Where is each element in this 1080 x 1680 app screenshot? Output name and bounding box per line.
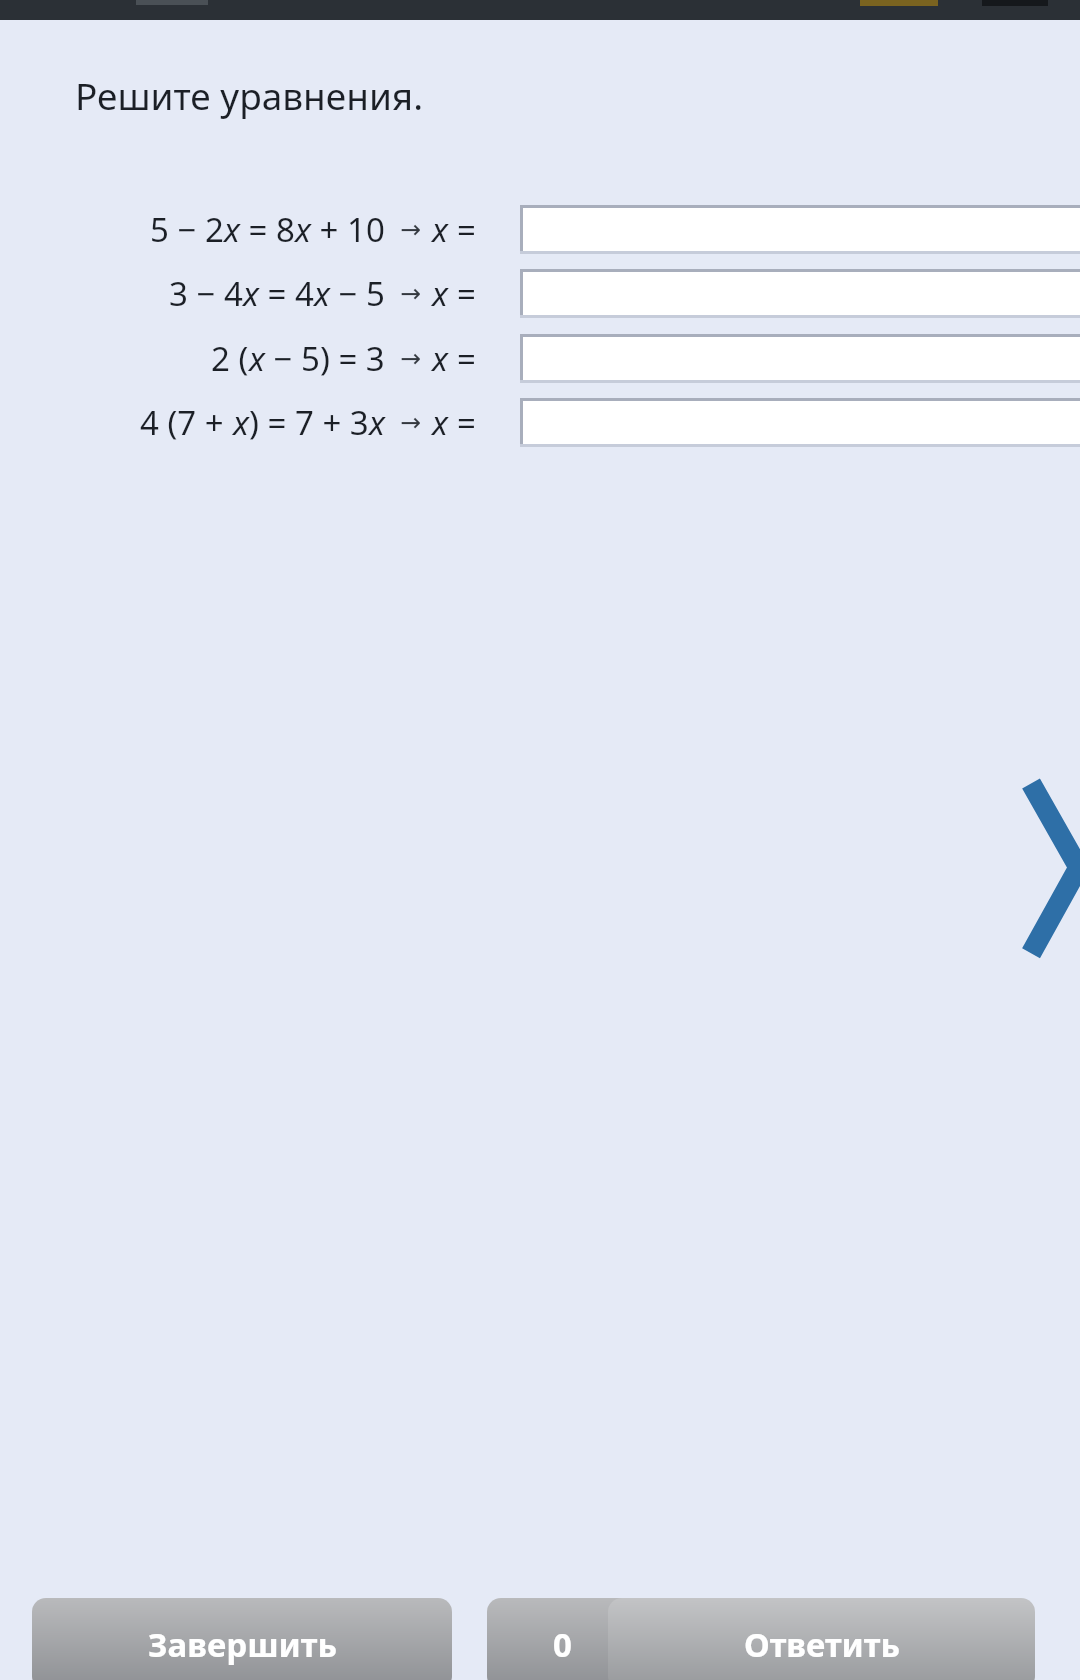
staticText: x xyxy=(432,336,448,381)
staticText: Завершить xyxy=(148,1622,337,1667)
staticText: → xyxy=(400,279,421,308)
staticText: x xyxy=(432,207,448,252)
staticText: 5 − 2 xyxy=(150,207,224,252)
staticText: − 5 xyxy=(330,271,385,316)
button[interactable]: Ответить xyxy=(608,1598,1035,1680)
button[interactable]: Поле для ответа xyxy=(520,334,1080,383)
button[interactable]: Поле для ответа xyxy=(520,205,1080,254)
staticText: = 4 xyxy=(259,271,314,316)
staticText: = xyxy=(457,400,476,445)
staticText: 2 ( xyxy=(211,336,249,381)
staticText: x xyxy=(233,400,249,445)
staticText: Решите уравнения. xyxy=(75,70,424,120)
staticText: = xyxy=(457,271,476,316)
staticText: x xyxy=(369,400,385,445)
staticText: x xyxy=(432,400,448,445)
staticText: → xyxy=(400,408,421,437)
staticText: x xyxy=(224,207,240,252)
button[interactable]: Счёт 0 xyxy=(487,1598,637,1680)
staticText: x xyxy=(243,271,259,316)
staticText: 3 − 4 xyxy=(169,271,243,316)
staticText: 4 (7 + xyxy=(140,400,233,445)
button[interactable]: Далее xyxy=(1012,780,1080,955)
staticText: = xyxy=(457,336,476,381)
staticText: x xyxy=(295,207,311,252)
staticText: Ответить xyxy=(744,1622,900,1667)
button[interactable]: Поле для ответа xyxy=(520,269,1080,318)
staticText: x xyxy=(432,271,448,316)
staticText: x xyxy=(314,271,330,316)
staticText: = 8 xyxy=(240,207,295,252)
staticText: → xyxy=(400,344,421,373)
staticText: x xyxy=(249,336,265,381)
button[interactable]: Завершить xyxy=(32,1598,452,1680)
staticText: + 10 xyxy=(311,207,385,252)
staticText: 0 xyxy=(553,1622,572,1667)
staticText: − 5) = 3 xyxy=(265,336,385,381)
button[interactable]: Поле для ответа xyxy=(520,398,1080,447)
staticText: → xyxy=(400,215,421,244)
staticText: ) = 7 + 3 xyxy=(249,400,369,445)
staticText: = xyxy=(457,207,476,252)
